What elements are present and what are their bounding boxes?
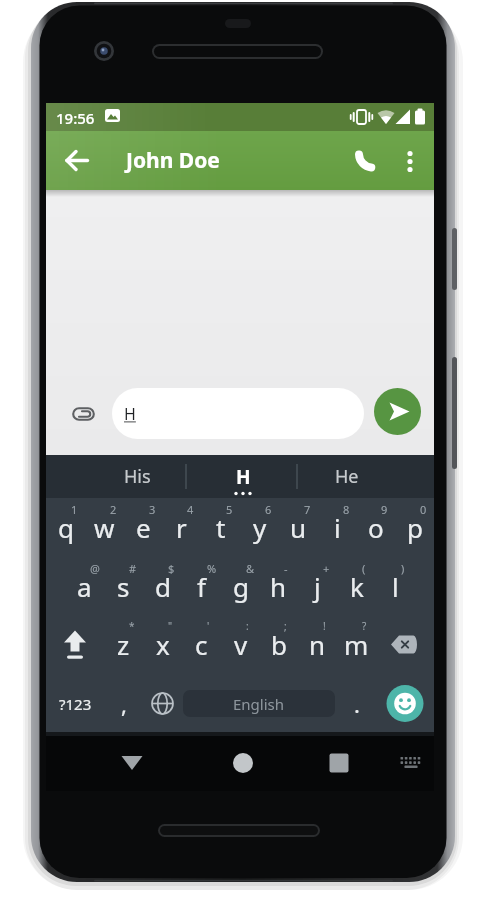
staticText: 4 — [187, 502, 194, 517]
button[interactable]: e — [124, 498, 163, 557]
button[interactable] — [315, 739, 363, 787]
button[interactable]: m — [337, 615, 376, 674]
button[interactable] — [219, 739, 267, 787]
button[interactable]: u — [279, 498, 318, 557]
staticText: He — [335, 464, 359, 489]
staticText: - — [284, 561, 288, 576]
button[interactable]: z — [104, 615, 143, 674]
staticText: 5 — [226, 502, 233, 517]
button[interactable] — [46, 615, 104, 674]
staticText: z — [117, 627, 130, 662]
staticText: f — [197, 569, 206, 604]
button[interactable] — [392, 139, 428, 183]
staticText: H — [236, 464, 251, 490]
button[interactable] — [143, 674, 182, 733]
staticText: v — [234, 627, 248, 662]
staticText: b — [271, 627, 287, 662]
staticText: 0 — [420, 502, 427, 517]
staticText: h — [270, 569, 287, 604]
staticText: j — [314, 569, 321, 604]
button[interactable] — [63, 394, 103, 434]
button[interactable]: l — [376, 557, 415, 616]
button[interactable]: a — [65, 557, 104, 616]
staticText: e — [136, 510, 151, 545]
staticText: c — [195, 627, 208, 662]
button[interactable]: w — [85, 498, 124, 557]
staticText: n — [309, 627, 326, 662]
staticText: s — [117, 569, 130, 604]
staticText: * — [129, 619, 135, 633]
staticText: 19:56 — [56, 108, 95, 128]
staticText: + — [323, 561, 330, 576]
staticText: ( — [362, 561, 366, 576]
button[interactable]: h — [259, 557, 298, 616]
staticText: ?123 — [59, 694, 92, 714]
button[interactable]: , — [104, 674, 143, 733]
staticText: $ — [168, 561, 175, 576]
button[interactable]: H — [203, 455, 283, 498]
staticText: John Doe — [126, 146, 220, 175]
button[interactable]: x — [143, 615, 182, 674]
button[interactable] — [376, 674, 434, 733]
staticText: ; — [284, 619, 287, 633]
staticText: @ — [90, 561, 100, 576]
button[interactable] — [374, 388, 421, 435]
button[interactable]: H — [112, 388, 364, 439]
staticText: i — [334, 510, 341, 545]
button[interactable]: . — [337, 674, 376, 733]
button[interactable] — [343, 139, 387, 183]
button[interactable]: b — [259, 615, 298, 674]
button[interactable]: His — [77, 455, 197, 498]
staticText: ) — [401, 561, 405, 576]
button[interactable] — [57, 140, 97, 180]
button[interactable]: t — [201, 498, 240, 557]
button[interactable]: g — [221, 557, 260, 616]
staticText: g — [233, 569, 249, 604]
staticText: His — [124, 464, 151, 489]
button[interactable]: English — [183, 690, 335, 717]
button[interactable]: s — [104, 557, 143, 616]
staticText: H — [124, 403, 136, 425]
staticText: t — [216, 510, 226, 545]
staticText: m — [344, 627, 369, 662]
staticText: ? — [362, 619, 367, 633]
button[interactable]: c — [182, 615, 221, 674]
button[interactable]: He — [307, 455, 387, 498]
staticText: x — [156, 627, 170, 662]
button[interactable]: f — [182, 557, 221, 616]
button[interactable]: y — [240, 498, 279, 557]
staticText: l — [392, 569, 399, 604]
staticText: y — [253, 510, 267, 545]
button[interactable]: d — [143, 557, 182, 616]
staticText: % — [207, 561, 217, 576]
staticText: & — [246, 561, 255, 576]
button[interactable]: j — [298, 557, 337, 616]
staticText: " — [168, 619, 173, 633]
staticText: ! — [323, 619, 326, 633]
staticText: 2 — [110, 502, 117, 517]
staticText: : — [246, 619, 249, 633]
button[interactable]: r — [162, 498, 201, 557]
staticText: 1 — [71, 502, 78, 517]
staticText: English — [233, 694, 285, 714]
button[interactable]: k — [337, 557, 376, 616]
button[interactable] — [376, 615, 434, 674]
button[interactable] — [389, 744, 429, 784]
staticText: ' — [207, 619, 210, 633]
staticText: w — [94, 510, 115, 545]
staticText: 8 — [343, 502, 350, 517]
staticText: # — [129, 561, 137, 576]
button[interactable]: n — [298, 615, 337, 674]
button[interactable]: i — [318, 498, 357, 557]
button[interactable]: q — [46, 498, 85, 557]
button[interactable]: o — [356, 498, 395, 557]
staticText: k — [350, 569, 364, 604]
button[interactable]: ?123 — [46, 674, 104, 733]
staticText: p — [407, 510, 423, 545]
staticText: 3 — [149, 502, 156, 517]
button[interactable] — [108, 739, 156, 787]
button[interactable]: p — [395, 498, 434, 557]
button[interactable]: v — [221, 615, 260, 674]
staticText: o — [368, 510, 384, 545]
staticText: 7 — [304, 502, 311, 517]
